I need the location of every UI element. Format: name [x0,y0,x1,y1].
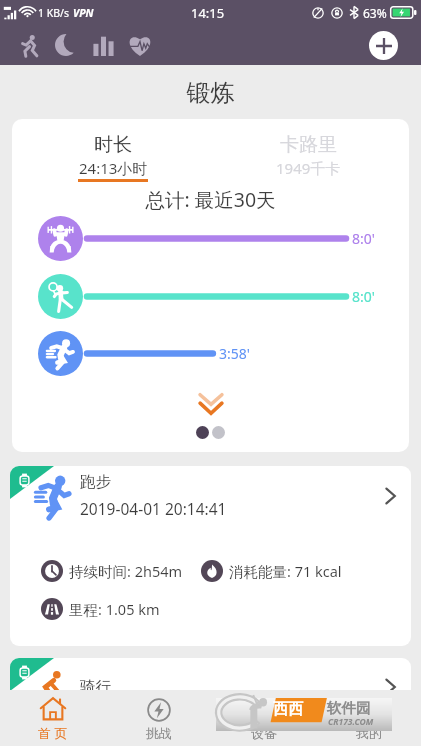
staticText: 首 页 [38,724,68,742]
button[interactable]: Sleep [48,27,84,63]
staticText: 消耗能量: 71 kcal [229,561,342,581]
button[interactable]: Run [11,27,47,63]
staticText: 里程: 1.05 km [69,599,160,619]
button[interactable]: 骑行 [10,658,411,746]
staticText: 1 KB/s [38,6,69,20]
staticText: CR173.COM [328,716,374,728]
button[interactable]: 设备 [211,690,316,746]
staticText: 2019-04-01 20:14:41 [80,498,227,519]
staticText: 时长 [94,133,132,157]
staticText: 8:0' [352,287,375,306]
staticText: 总计: 最近30天 [12,186,409,213]
button[interactable]: Heart rate [122,27,158,63]
staticText: 设备 [251,725,277,741]
button[interactable]: 跑步 [10,466,411,646]
other: Details [380,677,400,697]
staticText: 西西 [273,700,303,719]
button[interactable]: 挑战 [106,690,211,746]
button[interactable]: Expand [12,393,409,415]
staticText: 8:0' [352,229,375,248]
staticText: 14:15 [191,4,225,22]
button[interactable]: 我的 [316,690,421,746]
button[interactable]: Add [369,31,398,60]
button[interactable]: Statistics [85,27,121,63]
button[interactable]: 时长 [53,133,173,182]
staticText: 软件园 [327,699,371,717]
staticText: 跑步 [80,472,111,492]
staticText: 挑战 [146,725,172,741]
staticText: 锻炼 [0,78,421,108]
staticText: VPN [73,6,94,20]
staticText: 骑行 [80,677,111,697]
other: Details [380,486,400,506]
staticText: 我的 [356,725,382,741]
staticText: 1949千卡 [276,158,341,178]
staticText: 24:13小时 [79,158,148,178]
button[interactable]: 首 页 [0,690,106,746]
staticText: 3:58' [219,344,250,363]
staticText: 63% [363,5,387,21]
button[interactable]: 卡路里 [248,133,368,178]
staticText: 持续时间: 2h54m [69,561,183,581]
staticText: 卡路里 [280,133,337,157]
